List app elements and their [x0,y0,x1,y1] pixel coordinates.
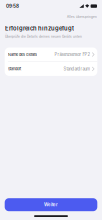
button[interactable]: Name des Geräts [5,47,97,61]
button[interactable]: Alles überspringen [65,13,98,21]
staticText: Name des Geräts [8,52,37,57]
staticText: Überprüfe die Details deines neuen Gerät… [5,35,82,38]
staticText: Standort [8,67,21,71]
staticText: Weiter [44,202,58,207]
staticText: 09:58 [6,3,19,9]
staticText: Alles überspringen [67,15,97,19]
button[interactable]: Standort [5,62,97,76]
staticText: Erfolgreich hinzugefügt [5,25,74,32]
staticText: Präsenzsensor FP2 [54,52,90,57]
staticText: Standardraum [63,66,90,71]
button[interactable]: Weiter [5,198,97,211]
